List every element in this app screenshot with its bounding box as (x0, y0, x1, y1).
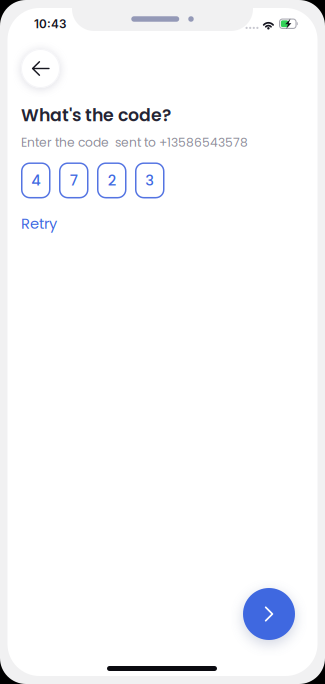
staticText: 4 (31, 170, 40, 191)
staticText: 2 (108, 170, 116, 191)
staticText: 3 (145, 170, 154, 191)
button[interactable]: Back (21, 49, 60, 88)
staticText: Enter the code sent to +13586543578 (21, 134, 248, 151)
staticText: What's the code? (21, 103, 171, 127)
button[interactable]: Continue (243, 588, 295, 640)
staticText: 7 (70, 170, 78, 191)
staticText: 10:43 (34, 17, 66, 31)
button[interactable]: Retry (21, 213, 57, 234)
staticText: Retry (21, 213, 57, 234)
